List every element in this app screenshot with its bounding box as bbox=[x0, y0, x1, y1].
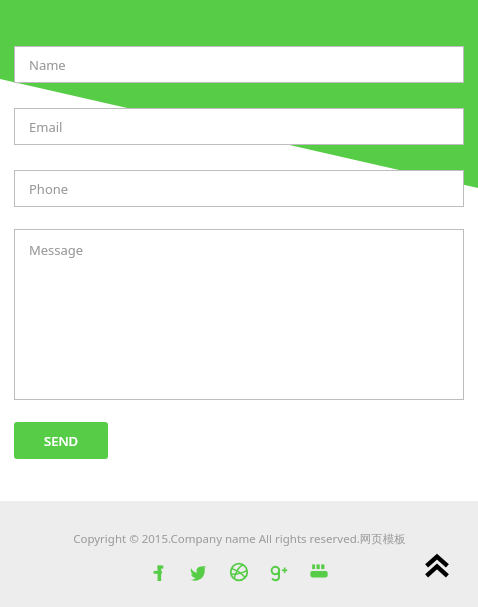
button[interactable]: YouTube bbox=[308, 561, 330, 583]
staticText: Message bbox=[29, 241, 84, 259]
staticText: Copyright © 2015.Company name All rights… bbox=[73, 531, 406, 547]
button[interactable]: Twitter bbox=[188, 561, 210, 583]
button[interactable]: Dribbble bbox=[228, 561, 250, 583]
staticText: Email bbox=[29, 118, 63, 136]
button[interactable]: Email bbox=[14, 108, 464, 145]
button[interactable]: Facebook bbox=[148, 561, 170, 583]
button[interactable]: Name bbox=[14, 46, 464, 83]
staticText: Phone bbox=[29, 180, 69, 198]
button[interactable]: Phone bbox=[14, 170, 464, 207]
button[interactable]: Google Plus bbox=[268, 561, 290, 583]
button[interactable]: SEND bbox=[14, 422, 108, 459]
button[interactable]: Scroll to top bbox=[419, 549, 455, 585]
staticText: Name bbox=[29, 56, 66, 74]
staticText: SEND bbox=[44, 432, 78, 450]
button[interactable]: Message bbox=[14, 229, 464, 400]
